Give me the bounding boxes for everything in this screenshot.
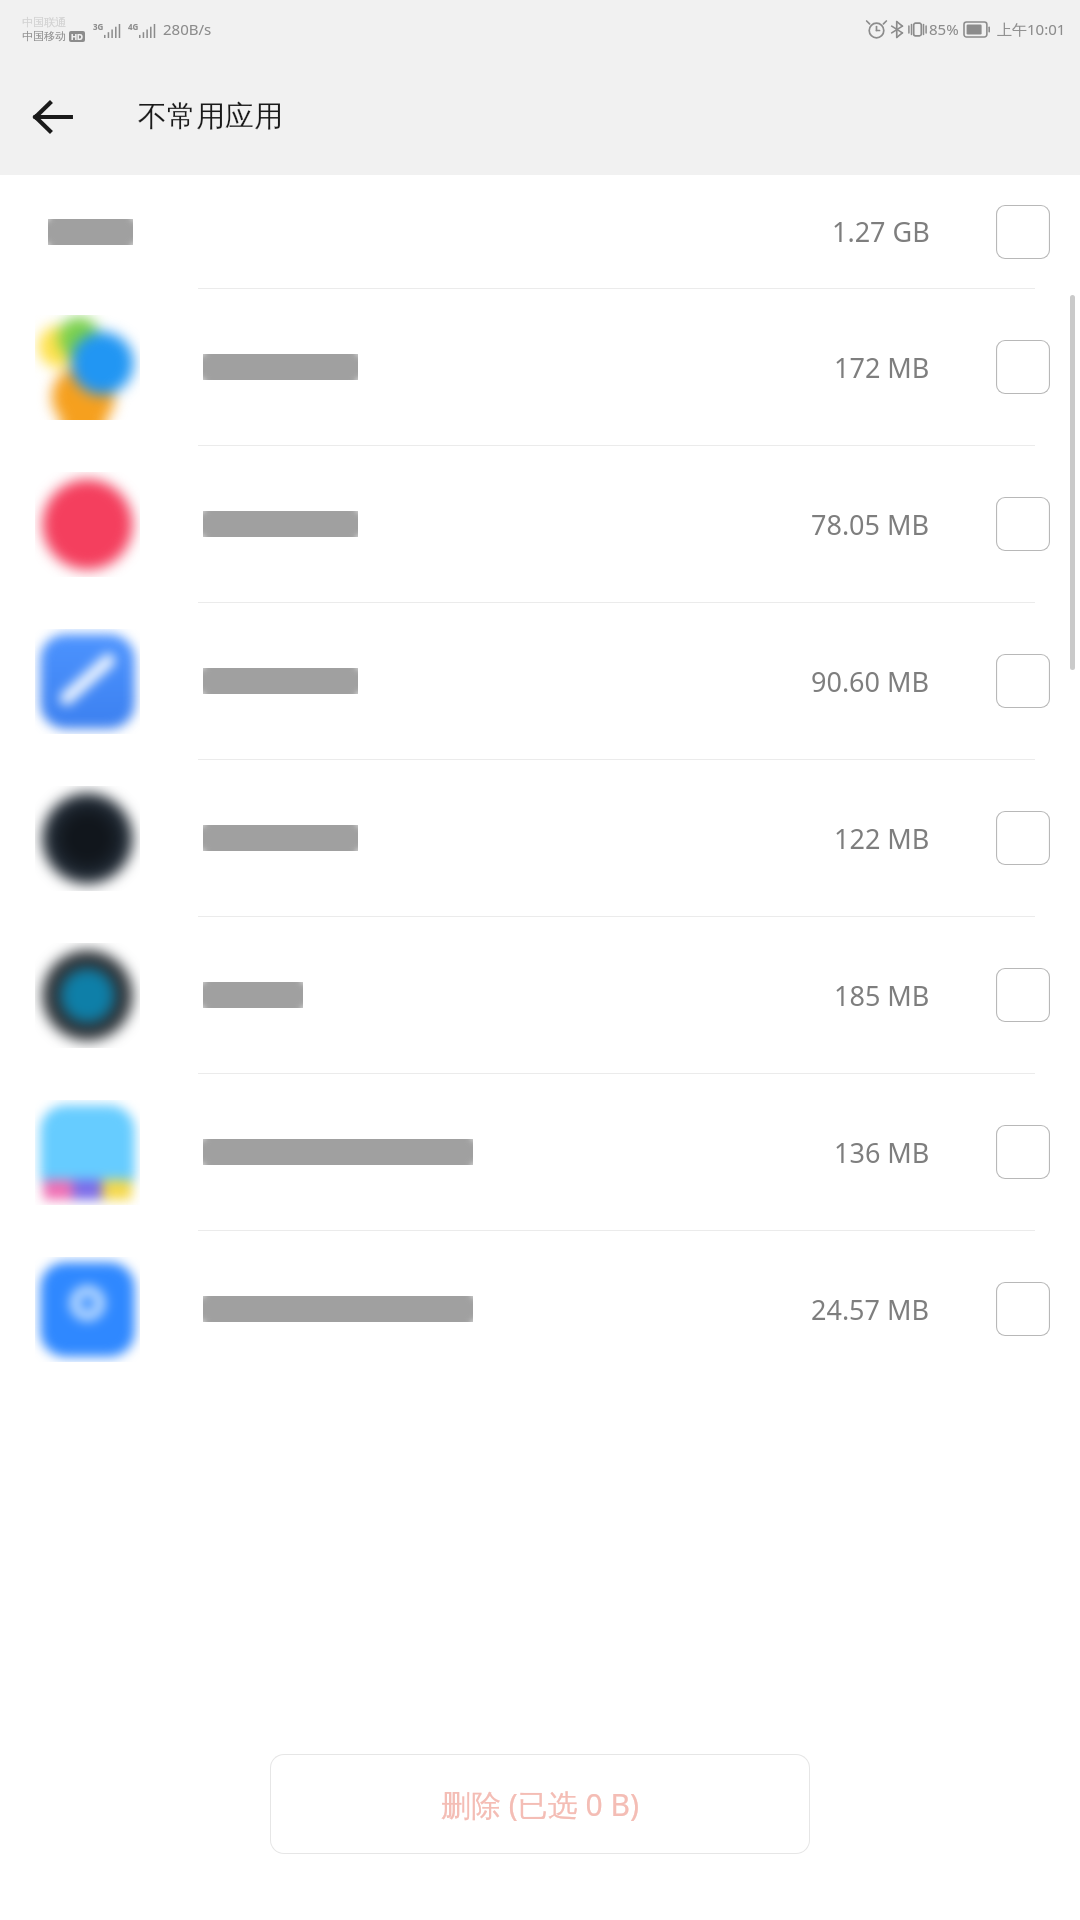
staticText: 中国联通 xyxy=(22,15,66,29)
staticText: 4G xyxy=(128,21,139,32)
staticText: 78.05 MB xyxy=(811,506,930,543)
button[interactable]: 选择 xyxy=(996,968,1050,1022)
staticText: 3G xyxy=(93,21,104,32)
staticText: 280B/s xyxy=(163,19,212,39)
staticText: 122 MB xyxy=(834,820,930,857)
button[interactable]: 删除 (已选 0 B) xyxy=(270,1754,810,1854)
staticText: 172 MB xyxy=(834,349,930,386)
staticText: 136 MB xyxy=(834,1134,930,1171)
staticText: 85% xyxy=(929,19,959,39)
button[interactable]: 选择 xyxy=(996,654,1050,708)
button[interactable]: 78.05 MB xyxy=(0,445,1080,602)
staticText: 185 MB xyxy=(834,977,930,1014)
button[interactable]: 选择 xyxy=(996,497,1050,551)
staticText: 不常用应用 xyxy=(138,98,283,135)
button[interactable]: 136 MB xyxy=(0,1073,1080,1230)
staticText: 90.60 MB xyxy=(811,663,930,700)
button[interactable]: 24.57 MB xyxy=(0,1230,1080,1387)
button[interactable]: 选择 xyxy=(996,1125,1050,1179)
button[interactable]: 172 MB xyxy=(0,288,1080,445)
button[interactable]: 返回 xyxy=(22,86,84,148)
button[interactable]: 选择 xyxy=(996,811,1050,865)
button[interactable]: 选择 xyxy=(996,1282,1050,1336)
staticText: 上午10:01 xyxy=(997,19,1066,39)
button[interactable]: 选择 xyxy=(996,340,1050,394)
button[interactable]: 122 MB xyxy=(0,759,1080,916)
button[interactable]: 选择 xyxy=(996,205,1050,259)
staticText: 24.57 MB xyxy=(811,1291,930,1328)
staticText: 中国移动 xyxy=(22,29,66,43)
staticText: HD xyxy=(71,31,83,42)
button[interactable]: 90.60 MB xyxy=(0,602,1080,759)
staticText: 删除 (已选 0 B) xyxy=(441,1784,640,1825)
button[interactable]: 185 MB xyxy=(0,916,1080,1073)
staticText: 1.27 GB xyxy=(832,213,930,250)
